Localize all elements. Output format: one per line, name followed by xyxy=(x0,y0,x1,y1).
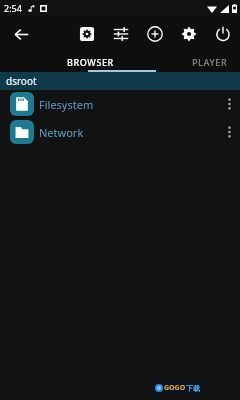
staticText: dsroot xyxy=(6,74,37,88)
staticText: Network xyxy=(39,125,84,140)
button[interactable]: Power xyxy=(210,21,236,47)
staticText: BROWSER xyxy=(67,56,114,68)
button[interactable]: Bookmarks xyxy=(74,21,100,47)
staticText: PLAYER xyxy=(192,56,228,68)
staticText: 2:54 xyxy=(4,2,22,14)
button[interactable]: dsroot xyxy=(0,72,240,90)
staticText: 下载 xyxy=(186,384,200,393)
button[interactable]: PLAYER xyxy=(180,52,240,72)
button[interactable]: Filesystem xyxy=(0,90,240,118)
button[interactable]: Equalizer xyxy=(108,21,134,47)
button[interactable]: BROWSER xyxy=(0,52,180,72)
button[interactable]: Add xyxy=(142,21,168,47)
button[interactable]: Back xyxy=(8,21,34,47)
button[interactable]: Network xyxy=(0,118,240,146)
staticText: GOGO xyxy=(164,383,186,393)
button[interactable]: More options for Filesystem xyxy=(218,90,240,118)
staticText: Filesystem xyxy=(39,97,94,112)
button[interactable]: Settings xyxy=(176,21,202,47)
button[interactable]: More options for Network xyxy=(218,118,240,146)
